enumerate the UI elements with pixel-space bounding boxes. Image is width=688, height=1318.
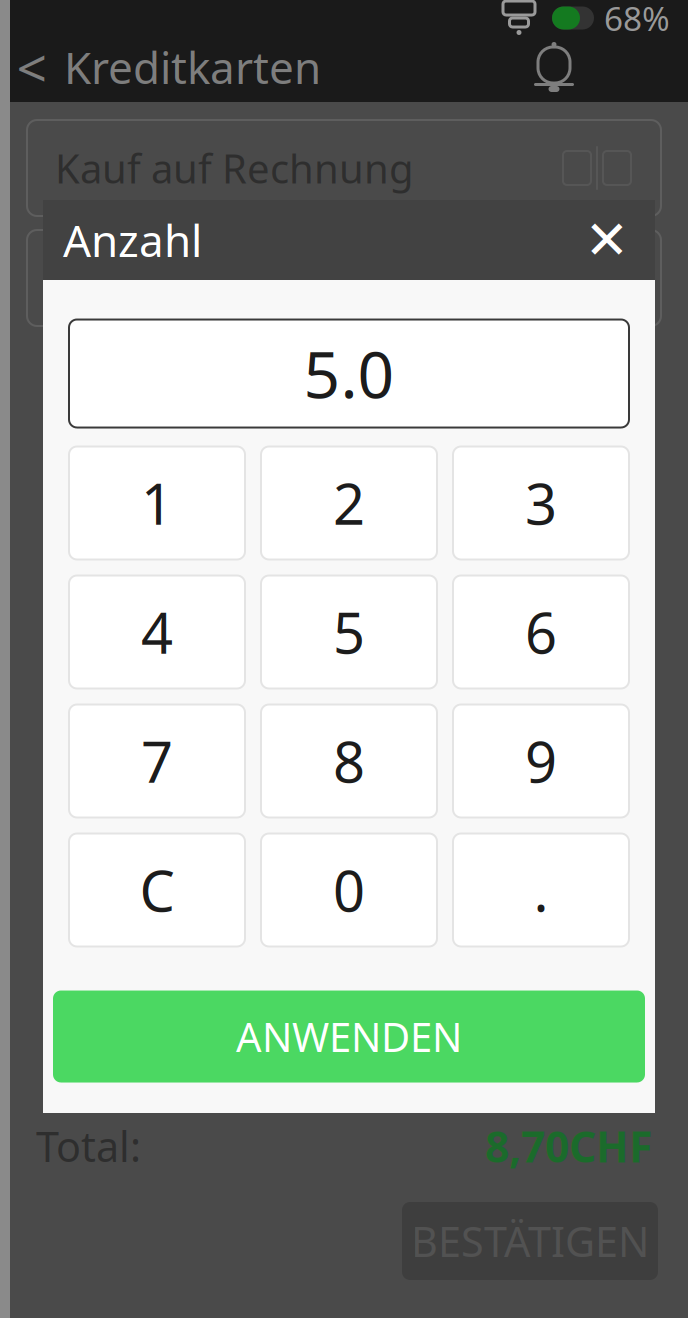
button[interactable]: 0 xyxy=(261,833,437,946)
staticText: Kreditkarten xyxy=(64,38,321,96)
button[interactable]: 5 xyxy=(261,575,437,688)
staticText: 2 xyxy=(333,466,365,540)
button[interactable]: 6 xyxy=(453,575,629,688)
staticText: < xyxy=(16,32,47,102)
staticText: 5 xyxy=(333,595,365,669)
button[interactable]: 4 xyxy=(69,575,245,688)
button[interactable]: 9 xyxy=(453,704,629,817)
staticText: Kauf auf Rechnung xyxy=(55,141,414,194)
button[interactable]: BESTÄTIGEN xyxy=(402,1202,658,1280)
staticText: 1 xyxy=(141,466,173,540)
button[interactable]: 2 xyxy=(261,446,437,559)
staticText: ANWENDEN xyxy=(236,1010,462,1063)
button[interactable]: Back xyxy=(0,37,64,97)
staticText: 0 xyxy=(333,853,365,927)
button[interactable]: ANWENDEN xyxy=(53,990,645,1082)
button[interactable]: Close xyxy=(571,202,643,278)
button[interactable]: 8 xyxy=(261,704,437,817)
staticText: Total: xyxy=(36,1119,141,1173)
staticText: C xyxy=(139,853,174,927)
staticText: BESTÄTIGEN xyxy=(411,1214,649,1268)
button[interactable]: Notifications xyxy=(512,37,596,97)
staticText: 8,70CHF xyxy=(485,1118,652,1174)
staticText: 68% xyxy=(604,0,670,40)
staticText: . xyxy=(533,853,548,927)
staticText: 3 xyxy=(525,466,557,540)
button[interactable]: 1 xyxy=(69,446,245,559)
staticText: 4 xyxy=(141,595,173,669)
staticText: 7 xyxy=(141,724,173,798)
button[interactable]: C xyxy=(69,833,245,946)
staticText: ✕ xyxy=(584,210,629,270)
staticText: 9 xyxy=(525,724,557,798)
staticText: 6 xyxy=(525,595,557,669)
button[interactable]: . xyxy=(453,833,629,946)
button[interactable]: 3 xyxy=(453,446,629,559)
staticText: Anzahl xyxy=(63,211,202,269)
button[interactable]: 7 xyxy=(69,704,245,817)
staticText: 8 xyxy=(333,724,365,798)
staticText: 5.0 xyxy=(303,331,394,416)
